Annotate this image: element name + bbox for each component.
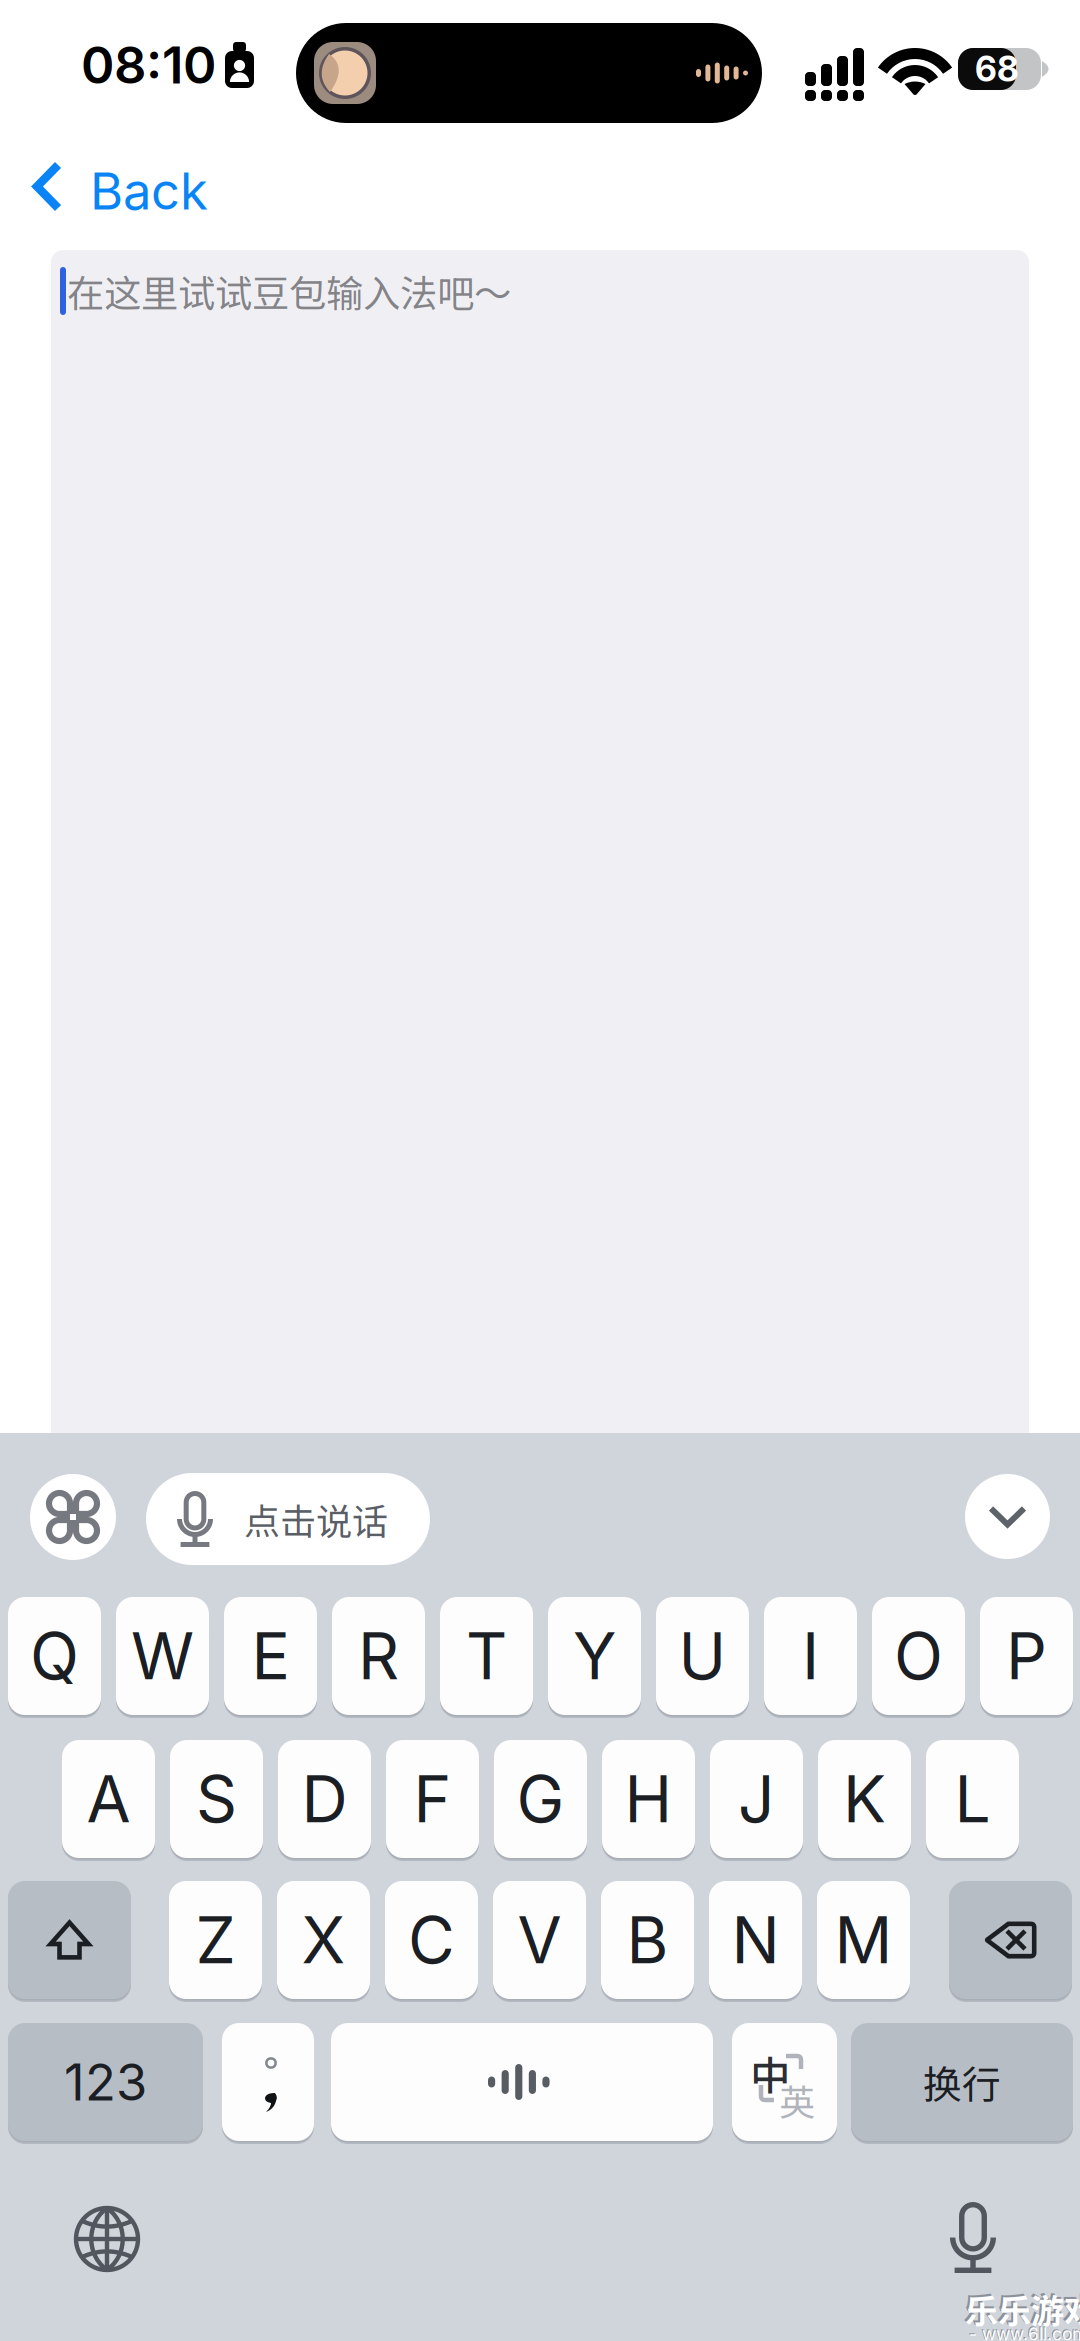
button[interactable]: I bbox=[764, 1597, 857, 1715]
staticText: 乐乐游戏 bbox=[963, 2283, 1080, 2331]
staticText: H bbox=[624, 1760, 672, 1838]
staticText: M bbox=[834, 1901, 892, 1979]
button[interactable]: V bbox=[493, 1881, 586, 1999]
staticText: L bbox=[954, 1760, 990, 1838]
button[interactable]: M bbox=[817, 1881, 910, 1999]
staticText: N bbox=[731, 1901, 779, 1979]
button[interactable]: L bbox=[926, 1740, 1019, 1858]
button[interactable]: O bbox=[872, 1597, 965, 1715]
staticText: D bbox=[301, 1760, 347, 1838]
staticText: G bbox=[516, 1760, 564, 1838]
staticText: 乐乐游戏 bbox=[965, 2285, 1080, 2333]
button[interactable]: Y bbox=[548, 1597, 641, 1715]
button[interactable]: Q bbox=[8, 1597, 101, 1715]
button[interactable]: E bbox=[224, 1597, 317, 1715]
button[interactable]: Switch keyboard bbox=[52, 2184, 162, 2294]
staticText: 英 bbox=[779, 2074, 815, 2126]
button[interactable]: H bbox=[602, 1740, 695, 1858]
button[interactable]: Delete bbox=[949, 1881, 1072, 1999]
button[interactable]: B bbox=[601, 1881, 694, 1999]
staticText: 换行 bbox=[923, 2054, 1001, 2110]
staticText: A bbox=[86, 1760, 130, 1838]
button[interactable]: Z bbox=[169, 1881, 262, 1999]
button[interactable]: Back bbox=[0, 142, 240, 242]
button[interactable]: C bbox=[385, 1881, 478, 1999]
staticText: X bbox=[301, 1901, 345, 1979]
staticText: O bbox=[894, 1617, 943, 1695]
button[interactable]: A bbox=[62, 1740, 155, 1858]
button[interactable]: 换行 bbox=[851, 2023, 1073, 2141]
staticText: T bbox=[466, 1617, 507, 1695]
staticText: - www.6ll.com - bbox=[968, 2322, 1080, 2341]
staticText: B bbox=[626, 1901, 668, 1979]
staticText: - www.6ll.com - bbox=[969, 2323, 1080, 2341]
button[interactable]: N bbox=[709, 1881, 802, 1999]
button[interactable]: D bbox=[278, 1740, 371, 1858]
staticText: Y bbox=[573, 1617, 616, 1695]
button[interactable]: Dictation bbox=[918, 2182, 1028, 2292]
staticText: 点击说话 bbox=[244, 1493, 388, 1545]
staticText: K bbox=[843, 1760, 886, 1838]
staticText: 123 bbox=[64, 2051, 147, 2113]
button[interactable]: J bbox=[710, 1740, 803, 1858]
staticText: 在这里试试豆包输入法吧～ bbox=[67, 264, 511, 318]
staticText: V bbox=[517, 1901, 561, 1979]
button[interactable]: P bbox=[980, 1597, 1073, 1715]
button[interactable]: X bbox=[277, 1881, 370, 1999]
button[interactable]: S bbox=[170, 1740, 263, 1858]
button[interactable]: 点击说话 bbox=[146, 1473, 430, 1565]
button[interactable]: Shift bbox=[8, 1881, 131, 1999]
button[interactable]: G bbox=[494, 1740, 587, 1858]
staticText: 68 bbox=[975, 48, 1019, 90]
staticText: E bbox=[251, 1617, 289, 1695]
button[interactable]: T bbox=[440, 1597, 533, 1715]
staticText: R bbox=[358, 1617, 399, 1695]
staticText: 08:10 bbox=[81, 34, 216, 96]
staticText: W bbox=[131, 1617, 194, 1695]
staticText: C bbox=[408, 1901, 455, 1979]
button[interactable]: F bbox=[386, 1740, 479, 1858]
button[interactable]: Punctuation bbox=[222, 2023, 314, 2141]
button[interactable]: R bbox=[332, 1597, 425, 1715]
staticText: Q bbox=[30, 1617, 79, 1695]
staticText: Back bbox=[90, 160, 208, 222]
staticText: Z bbox=[195, 1901, 235, 1979]
button[interactable]: U bbox=[656, 1597, 749, 1715]
staticText: I bbox=[802, 1617, 819, 1695]
staticText: P bbox=[1006, 1617, 1047, 1695]
button[interactable]: W bbox=[116, 1597, 209, 1715]
button[interactable]: Chinese English toggle bbox=[732, 2023, 837, 2141]
button[interactable]: Keyboard panel bbox=[30, 1474, 116, 1560]
staticText: S bbox=[196, 1760, 237, 1838]
staticText: 中 bbox=[750, 2044, 790, 2102]
button[interactable]: 123 bbox=[8, 2023, 203, 2141]
button[interactable]: Hide keyboard bbox=[965, 1474, 1050, 1559]
staticText: U bbox=[678, 1617, 726, 1695]
staticText: F bbox=[413, 1760, 451, 1838]
button[interactable]: K bbox=[818, 1740, 911, 1858]
button[interactable]: Voice input bbox=[331, 2023, 713, 2141]
staticText: J bbox=[738, 1760, 775, 1838]
